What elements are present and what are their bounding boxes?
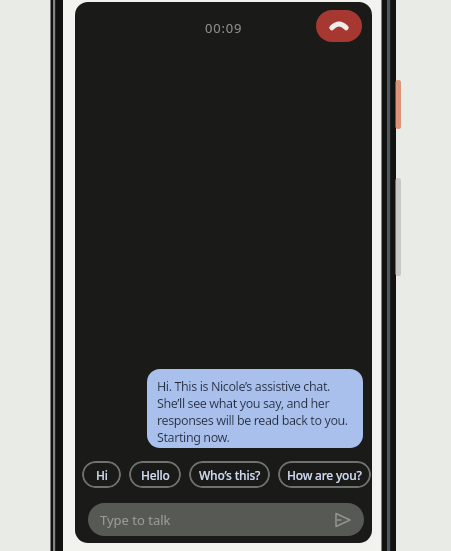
- staticText: How are you?: [287, 467, 362, 483]
- button[interactable]: Hello: [129, 461, 181, 488]
- staticText: 00:09: [205, 19, 243, 37]
- staticText: Who’s this?: [199, 467, 261, 483]
- staticText: Hi. This is Nicole’s assistive chat.: [157, 378, 330, 395]
- button[interactable]: Who’s this?: [189, 461, 270, 488]
- staticText: Starting now.: [157, 429, 230, 446]
- staticText: She’ll see what you say, and her: [157, 395, 330, 412]
- staticText: Hello: [141, 467, 170, 483]
- button[interactable]: Hi: [82, 461, 121, 488]
- staticText: Type to talk: [100, 511, 171, 529]
- staticText: responses will be read back to you.: [157, 412, 348, 429]
- button[interactable]: [316, 10, 362, 42]
- button[interactable]: Type to talk: [88, 503, 364, 536]
- button[interactable]: How are you?: [278, 461, 371, 488]
- staticText: Hi: [96, 467, 108, 483]
